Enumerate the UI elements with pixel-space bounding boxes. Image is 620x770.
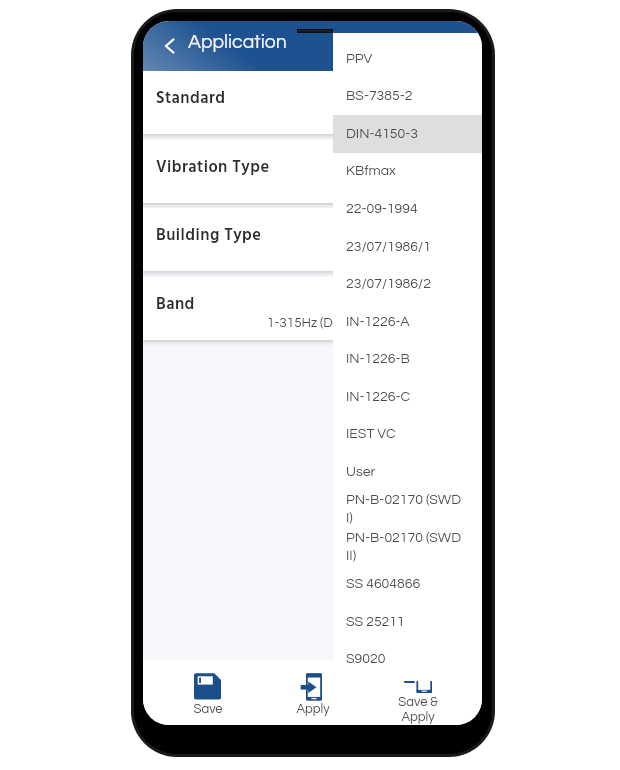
staticText: Band xyxy=(156,292,195,318)
button[interactable]: 22-09-1994 xyxy=(333,190,482,228)
staticText: IN-1226-C xyxy=(346,390,464,404)
button[interactable]: SS 4604866 xyxy=(333,565,482,603)
button[interactable]: IEST VC xyxy=(333,415,482,453)
staticText: 22-09-1994 xyxy=(346,202,464,216)
staticText: 23/07/1986/2 xyxy=(346,277,464,291)
staticText: IEST VC xyxy=(346,427,464,441)
button[interactable]: IN-1226-B xyxy=(333,340,482,378)
staticText: 23/07/1986/1 xyxy=(346,240,464,254)
staticText: Save & Apply xyxy=(398,695,438,723)
button[interactable]: PN-B-02170 (SWD I) xyxy=(333,490,482,528)
button[interactable]: 23/07/1986/2 xyxy=(333,265,482,303)
staticText: IN-1226-B xyxy=(346,352,464,366)
button[interactable]: PN-B-02170 (SWD II) xyxy=(333,528,482,566)
button[interactable]: 23/07/1986/1 xyxy=(333,228,482,266)
button[interactable]: KBfmax xyxy=(333,152,482,190)
button[interactable]: S9020 xyxy=(333,640,482,678)
button[interactable]: Save xyxy=(156,660,260,725)
staticText: Apply xyxy=(296,702,330,715)
button[interactable]: PPV xyxy=(333,40,482,78)
staticText: Save xyxy=(193,702,223,715)
staticText: 1-315Hz (DIN) xyxy=(267,316,350,330)
staticText: Application xyxy=(188,32,287,52)
button[interactable]: Standard xyxy=(143,71,482,134)
staticText: PN-B-02170 (SWD II) xyxy=(346,531,464,563)
staticText: Building Type xyxy=(156,223,262,249)
button[interactable]: Building Type xyxy=(143,208,482,271)
staticText: BS-7385-2 xyxy=(346,89,464,103)
staticText: User xyxy=(346,465,464,479)
button[interactable]: IN-1226-A xyxy=(333,303,482,341)
button[interactable]: User xyxy=(333,453,482,491)
button[interactable]: DIN-4150-3 xyxy=(333,115,482,153)
staticText: IN-1226-A xyxy=(346,315,464,329)
staticText: Vibration Type xyxy=(156,155,270,181)
staticText: DIN-4150-3 xyxy=(346,127,464,141)
button[interactable]: Save & Apply xyxy=(366,660,470,725)
button[interactable]: IN-1226-C xyxy=(333,378,482,416)
button[interactable]: SS 25211 xyxy=(333,603,482,641)
staticText: SS 25211 xyxy=(346,615,464,629)
staticText: Standard xyxy=(156,86,226,112)
staticText: PN-B-02170 (SWD I) xyxy=(346,493,464,525)
button[interactable]: BS-7385-2 xyxy=(333,77,482,115)
button[interactable]: Back xyxy=(150,27,188,65)
staticText: KBfmax xyxy=(346,164,464,178)
staticText: PPV xyxy=(346,52,464,66)
button[interactable]: Band xyxy=(143,277,482,340)
button[interactable]: Vibration Type xyxy=(143,140,482,203)
staticText: S9020 xyxy=(346,652,464,666)
button[interactable]: Apply xyxy=(261,660,365,725)
staticText: SS 4604866 xyxy=(346,577,464,591)
